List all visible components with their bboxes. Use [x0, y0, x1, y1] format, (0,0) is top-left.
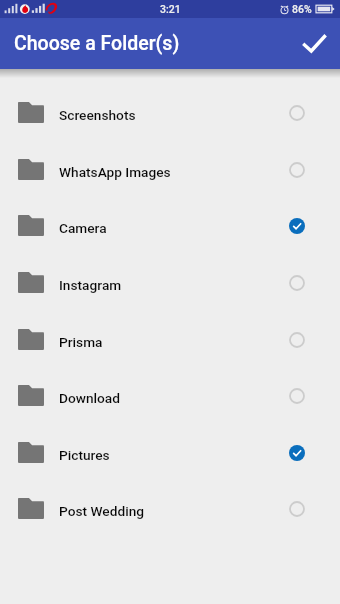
button[interactable]: Select Instagram: [281, 267, 313, 299]
staticText: Choose a Folder(s): [14, 32, 180, 55]
button[interactable]: Post Wedding: [0, 480, 340, 537]
button[interactable]: WhatsApp Images: [0, 141, 340, 198]
button[interactable]: Pictures: [0, 424, 340, 481]
button[interactable]: Instagram: [0, 254, 340, 311]
staticText: WhatsApp Images: [59, 164, 281, 180]
staticText: 86%: [292, 3, 312, 15]
staticText: Camera: [59, 220, 281, 236]
staticText: Prisma: [59, 334, 281, 350]
staticText: Screenshots: [59, 107, 281, 123]
button[interactable]: Select Download: [281, 380, 313, 412]
button[interactable]: Select Screenshots: [281, 97, 313, 129]
button[interactable]: Select Post Wedding: [281, 493, 313, 525]
button[interactable]: Select Prisma: [281, 324, 313, 356]
button[interactable]: Camera: [0, 197, 340, 254]
button[interactable]: Download: [0, 367, 340, 424]
staticText: Instagram: [59, 277, 281, 293]
button[interactable]: Pictures selected: [281, 437, 313, 469]
button[interactable]: Select WhatsApp Images: [281, 154, 313, 186]
staticText: 3:21: [160, 3, 181, 15]
staticText: Post Wedding: [59, 503, 281, 519]
button[interactable]: Camera selected: [281, 210, 313, 242]
button[interactable]: Screenshots: [0, 84, 340, 141]
staticText: Pictures: [59, 447, 281, 463]
button[interactable]: Confirm selection: [294, 24, 334, 64]
staticText: Download: [59, 390, 281, 406]
button[interactable]: Prisma: [0, 311, 340, 368]
